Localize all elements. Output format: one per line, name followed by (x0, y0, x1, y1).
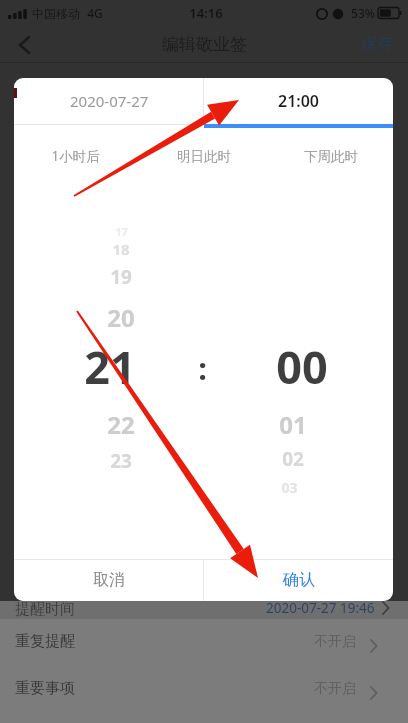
staticText: 不开启 (314, 680, 356, 698)
staticText: 20 (107, 301, 135, 334)
staticText: 01 (279, 408, 307, 441)
staticText: 53% (351, 5, 375, 21)
button[interactable]: 保存 (297, 16, 408, 72)
staticText: : (198, 347, 207, 389)
button[interactable]: 重要事项 (0, 669, 408, 716)
staticText: 明日此时 (177, 148, 231, 165)
button[interactable]: 取消 (14, 559, 204, 601)
button[interactable]: 2020-07-27 (14, 78, 204, 124)
staticText: 重复提醒 (15, 632, 75, 651)
staticText: 18 (112, 239, 130, 259)
staticText: 19 (110, 264, 132, 290)
button[interactable]: 1小时后 (14, 128, 155, 184)
staticText: 21 (84, 336, 136, 397)
staticText: 4G (87, 5, 103, 21)
staticText: 中国移动 (32, 6, 80, 21)
staticText: 下周此时 (304, 148, 358, 165)
staticText: 取消 (93, 570, 125, 590)
staticText: 14:16 (189, 4, 223, 22)
staticText: 02 (282, 446, 304, 472)
button[interactable]: 明日此时 (124, 128, 284, 184)
button[interactable]: 确认 (204, 559, 393, 601)
staticText: 重要事项 (15, 679, 75, 698)
staticText: 03 (281, 478, 298, 497)
staticText: 确认 (283, 570, 315, 590)
staticText: 不开启 (314, 633, 356, 651)
button[interactable]: 21:00 (204, 78, 393, 124)
staticText: 提醒时间 (15, 600, 75, 619)
staticText: 17 (115, 224, 128, 239)
staticText: 2020-07-27 (70, 91, 149, 111)
staticText: 22 (107, 408, 135, 441)
staticText: 保存 (361, 34, 393, 54)
staticText: 00 (276, 336, 328, 397)
staticText: 1小时后 (51, 147, 100, 165)
staticText: 编辑敬业签 (162, 34, 247, 55)
button[interactable]: 重复提醒 (0, 622, 408, 669)
button[interactable]: 下周此时 (251, 128, 393, 184)
staticText: 23 (110, 448, 132, 474)
staticText: 21:00 (278, 90, 320, 112)
staticText: 2020-07-27 19:46 (266, 599, 375, 617)
button[interactable] (0, 28, 50, 62)
